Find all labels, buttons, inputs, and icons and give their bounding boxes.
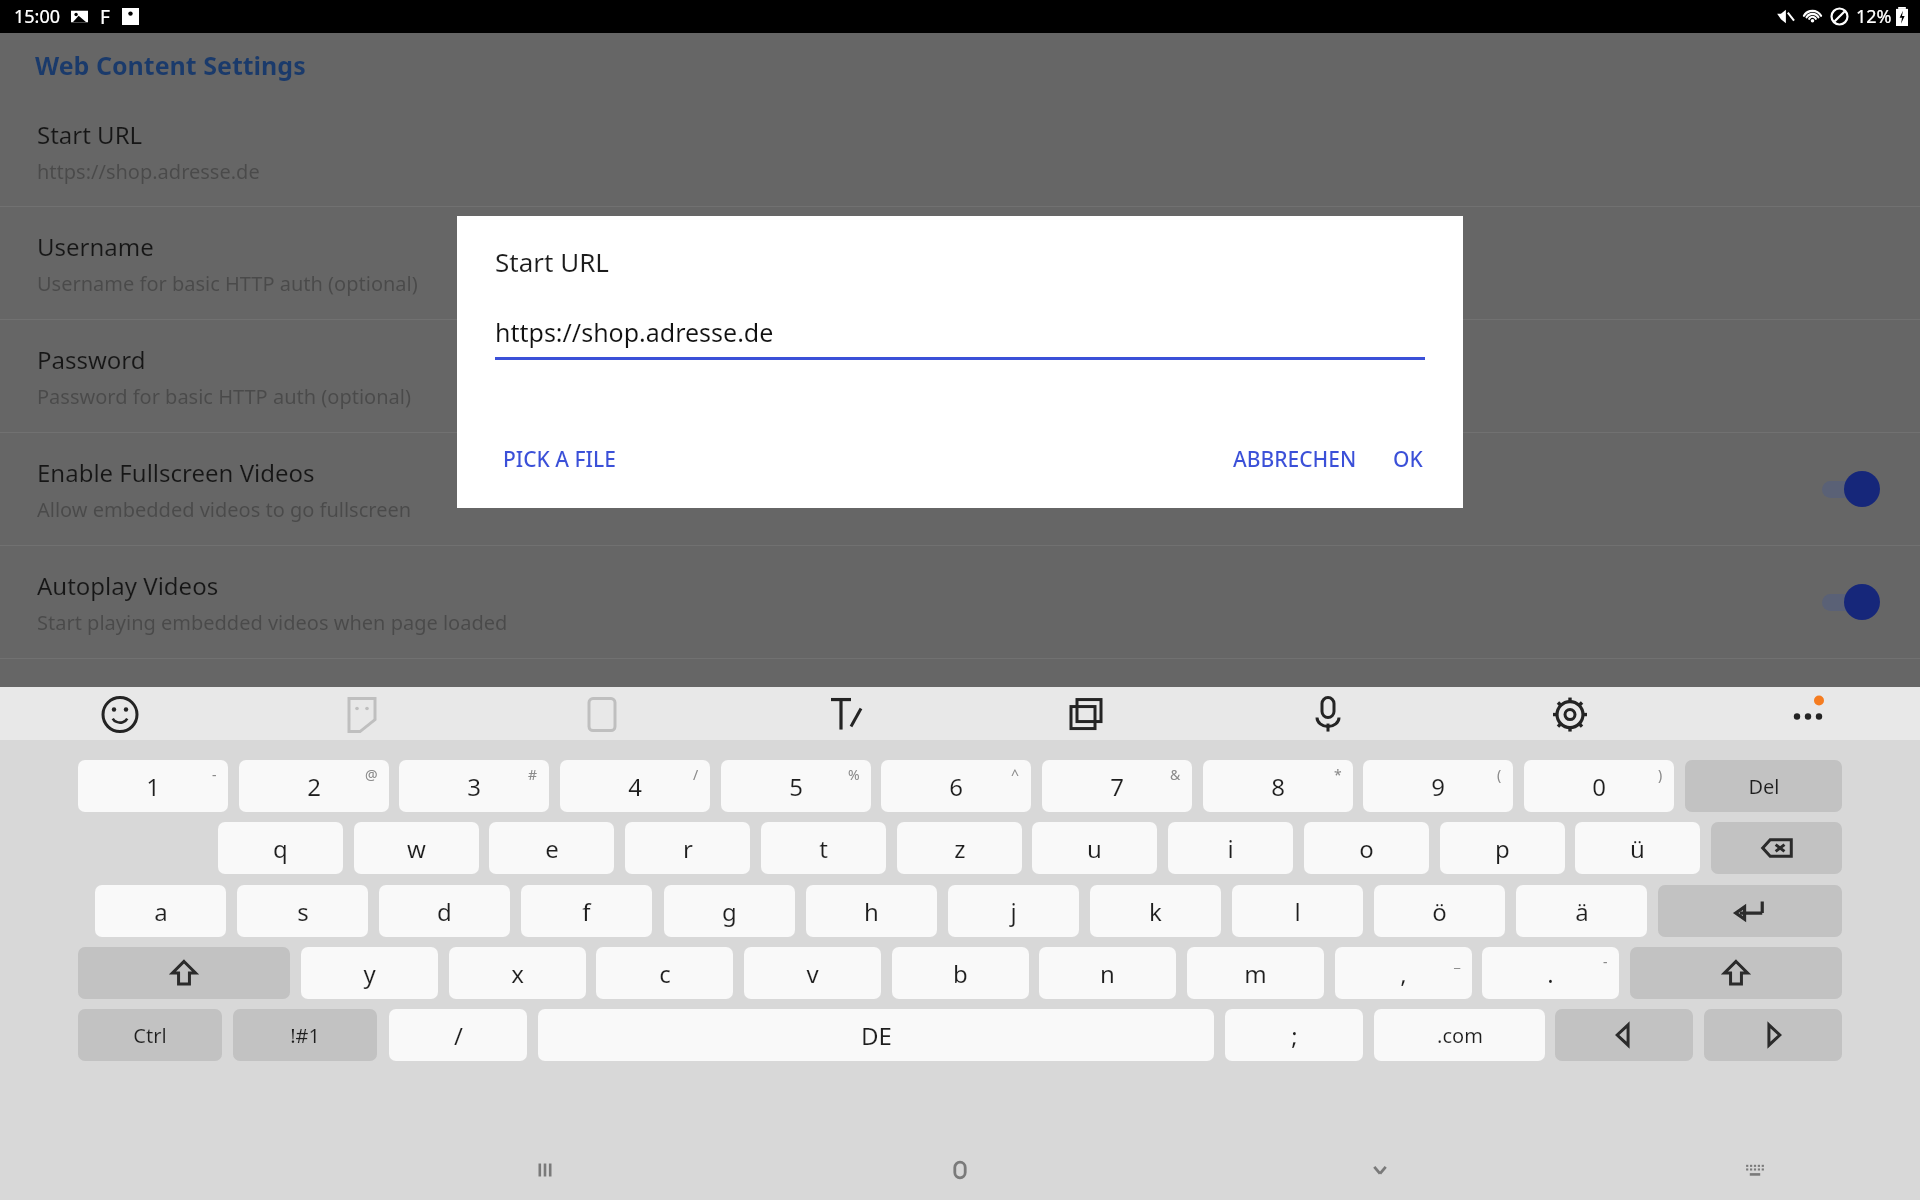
button[interactable]: p <box>1440 822 1565 874</box>
staticText: t <box>819 832 828 865</box>
button[interactable]: e <box>489 822 614 874</box>
staticText: - <box>1603 952 1608 971</box>
staticText: 5 <box>789 770 803 803</box>
button[interactable]: y <box>301 947 438 999</box>
staticText: 15:00 <box>14 4 61 29</box>
button[interactable]: Text edit <box>720 687 960 740</box>
button[interactable]: 7 <box>1042 760 1192 812</box>
button[interactable]: Cursor right <box>1704 1009 1842 1061</box>
button[interactable]: f <box>521 885 652 937</box>
button[interactable]: 1 <box>78 760 228 812</box>
button[interactable]: 5 <box>721 760 871 812</box>
staticText: Autoplay Videos <box>37 569 219 602</box>
button[interactable]: z <box>897 822 1022 874</box>
button[interactable]: w <box>354 822 479 874</box>
button[interactable]: Cursor left <box>1555 1009 1693 1061</box>
staticText: Start URL <box>37 118 143 151</box>
button[interactable]: 0 <box>1524 760 1674 812</box>
button[interactable]: Del <box>1685 760 1842 812</box>
staticText: j <box>1010 895 1017 928</box>
button[interactable]: ä <box>1516 885 1647 937</box>
button[interactable]: Shift <box>1630 947 1842 999</box>
button[interactable]: Username <box>0 207 1920 319</box>
button[interactable]: q <box>218 822 343 874</box>
staticText: q <box>273 832 288 865</box>
button[interactable]: ü <box>1575 822 1700 874</box>
button[interactable]: PICK A FILE <box>485 433 634 486</box>
button[interactable]: 3 <box>399 760 549 812</box>
button[interactable]: Ctrl <box>78 1009 222 1061</box>
staticText: c <box>659 957 671 990</box>
button[interactable]: Stickers <box>240 687 480 740</box>
button[interactable]: c <box>596 947 733 999</box>
staticText: 8 <box>1271 770 1285 803</box>
button[interactable]: 2 <box>239 760 389 812</box>
button[interactable]: Autoplay Videos <box>0 546 1920 658</box>
button[interactable]: n <box>1039 947 1176 999</box>
staticText: Password <box>37 343 146 376</box>
button[interactable]: Settings <box>1440 687 1680 740</box>
staticText: ö <box>1432 895 1447 928</box>
button[interactable]: u <box>1032 822 1157 874</box>
button[interactable]: r <box>625 822 750 874</box>
button[interactable]: OK <box>1375 433 1441 486</box>
staticText: u <box>1087 832 1102 865</box>
button[interactable]: o <box>1304 822 1429 874</box>
button[interactable]: g <box>664 885 795 937</box>
button[interactable]: DE <box>538 1009 1214 1061</box>
button[interactable]: Voice input <box>1200 687 1440 740</box>
button[interactable]: Backspace <box>1711 822 1842 874</box>
button[interactable]: ö <box>1374 885 1505 937</box>
button[interactable]: i <box>1168 822 1293 874</box>
button[interactable]: s <box>237 885 368 937</box>
staticText: h <box>864 895 879 928</box>
button[interactable]: , <box>1335 947 1472 999</box>
button[interactable]: Shift <box>78 947 290 999</box>
button[interactable]: 4 <box>560 760 710 812</box>
button[interactable]: Autoplay Videos <box>1818 582 1880 622</box>
button[interactable]: .com <box>1374 1009 1545 1061</box>
staticText: s <box>297 895 309 928</box>
button[interactable]: t <box>761 822 886 874</box>
button[interactable]: k <box>1090 885 1221 937</box>
button[interactable]: Password <box>0 320 1920 432</box>
button[interactable]: d <box>379 885 510 937</box>
staticText: d <box>437 895 452 928</box>
button[interactable]: a <box>95 885 226 937</box>
staticText: r <box>683 832 693 865</box>
button[interactable]: l <box>1232 885 1363 937</box>
button[interactable]: / <box>389 1009 527 1061</box>
button[interactable]: Recent apps <box>515 1140 575 1200</box>
button[interactable]: v <box>744 947 881 999</box>
button[interactable]: ; <box>1225 1009 1363 1061</box>
button[interactable]: GIF <box>480 687 720 740</box>
button[interactable]: 8 <box>1203 760 1353 812</box>
staticText: 0 <box>1592 770 1606 803</box>
button[interactable]: Hide keyboard <box>1350 1140 1410 1200</box>
button[interactable]: Home <box>930 1140 990 1200</box>
button[interactable]: b <box>892 947 1029 999</box>
staticText: - <box>212 765 217 784</box>
button[interactable]: . <box>1482 947 1619 999</box>
button[interactable]: Enable Fullscreen Videos <box>0 433 1920 545</box>
button[interactable]: Emoji <box>0 687 240 740</box>
staticText: a <box>154 895 168 928</box>
staticText: x <box>511 957 524 990</box>
button[interactable]: h <box>806 885 937 937</box>
staticText: 3 <box>467 770 481 803</box>
button[interactable]: Enable Fullscreen Videos <box>1818 469 1880 509</box>
button[interactable]: Start URL <box>0 96 1920 206</box>
button[interactable]: j <box>948 885 1079 937</box>
button[interactable]: More options <box>1680 687 1920 740</box>
staticText: F <box>100 4 110 30</box>
button[interactable]: Enter <box>1658 885 1842 937</box>
button[interactable]: ABBRECHEN <box>1215 433 1375 486</box>
button[interactable]: Change keyboard <box>1725 1140 1785 1200</box>
button[interactable]: m <box>1187 947 1324 999</box>
button[interactable]: 9 <box>1363 760 1513 812</box>
staticText: i <box>1227 832 1234 865</box>
button[interactable]: !#1 <box>233 1009 377 1061</box>
button[interactable]: x <box>449 947 586 999</box>
button[interactable]: 6 <box>881 760 1031 812</box>
button[interactable]: Clipboard <box>960 687 1200 740</box>
